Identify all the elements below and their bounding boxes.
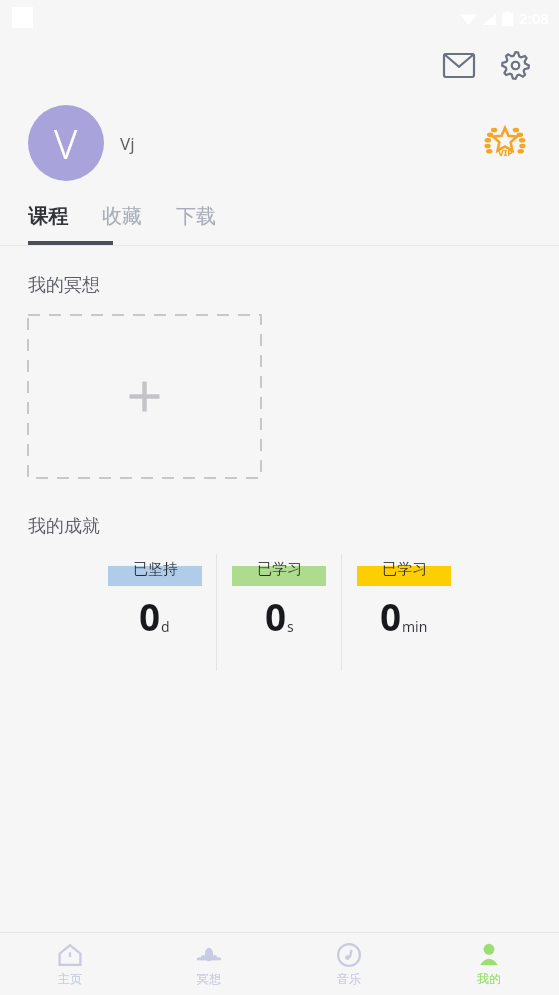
staticText: 音乐 <box>337 971 361 986</box>
staticText: 已学习 <box>257 560 302 579</box>
staticText: V <box>54 116 78 170</box>
staticText: 0 <box>380 591 402 641</box>
staticText: 2:08 <box>519 8 549 28</box>
staticText: 已学习 <box>382 560 427 579</box>
button[interactable]: 收藏 <box>102 204 176 229</box>
staticText: 我的 <box>477 971 501 986</box>
staticText: min <box>402 617 428 636</box>
staticText: 已坚持 <box>133 560 178 579</box>
staticText: d <box>161 617 170 636</box>
button[interactable]: 我的 <box>419 933 559 995</box>
staticText: 收藏 <box>102 204 142 229</box>
button[interactable]: Messages <box>437 43 481 87</box>
staticText: 冥想 <box>197 971 221 986</box>
button[interactable]: VIP <box>479 117 531 169</box>
button[interactable]: 已学习 <box>217 554 341 641</box>
button[interactable]: 已坚持 <box>93 554 216 641</box>
staticText: VIP <box>498 146 513 158</box>
button[interactable]: 主页 <box>0 933 139 995</box>
staticText: 0 <box>265 591 287 641</box>
staticText: 我的成就 <box>28 515 100 538</box>
button[interactable]: 音乐 <box>279 933 419 995</box>
staticText: 0 <box>139 591 161 641</box>
staticText: 课程 <box>28 204 68 229</box>
button[interactable]: 已学习 <box>342 554 466 641</box>
staticText: Vj <box>120 132 135 155</box>
button[interactable]: 课程 <box>28 204 102 229</box>
staticText: 我的冥想 <box>28 274 100 297</box>
button[interactable]: 下载 <box>176 204 216 229</box>
button[interactable]: Add meditation <box>28 315 261 478</box>
button[interactable]: Settings <box>493 43 537 87</box>
staticText: 下载 <box>176 204 216 229</box>
staticText: s <box>287 617 294 636</box>
button[interactable]: 冥想 <box>139 933 279 995</box>
staticText: 主页 <box>58 971 82 986</box>
button[interactable]: V <box>28 105 104 181</box>
